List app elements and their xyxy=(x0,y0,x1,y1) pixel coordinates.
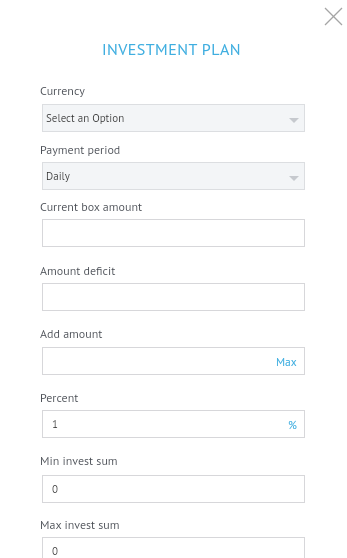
staticText: Current box amount xyxy=(40,199,143,215)
staticText: Min invest sum xyxy=(40,453,118,469)
staticText: 1 xyxy=(52,417,58,431)
button[interactable] xyxy=(42,219,305,247)
button[interactable]: 0 xyxy=(42,537,305,558)
button[interactable]: 0 xyxy=(42,475,305,503)
button[interactable]: Max xyxy=(42,347,305,375)
staticText: Currency xyxy=(40,83,85,99)
staticText: 0 xyxy=(52,482,58,496)
staticText: Max invest sum xyxy=(40,517,120,533)
staticText: INVESTMENT PLAN xyxy=(0,39,345,60)
staticText: Percent xyxy=(40,390,79,406)
staticText: 0 xyxy=(52,544,58,558)
button[interactable]: 1 xyxy=(42,410,305,438)
staticText: Payment period xyxy=(40,142,121,158)
staticText: Max xyxy=(276,354,297,369)
button[interactable]: Select an Option xyxy=(42,104,305,132)
staticText: % xyxy=(288,417,297,432)
button[interactable]: Close xyxy=(318,1,347,31)
staticText: Select an Option xyxy=(46,111,125,125)
staticText: Daily xyxy=(46,169,70,183)
staticText: Amount deficit xyxy=(40,263,116,279)
button[interactable] xyxy=(42,283,305,311)
button[interactable]: Daily xyxy=(42,162,305,190)
staticText: Add amount xyxy=(40,326,103,342)
